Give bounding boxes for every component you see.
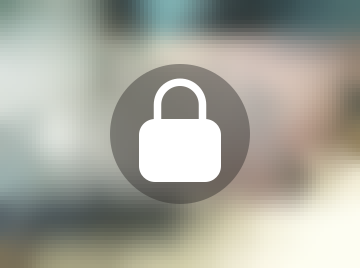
button[interactable]: Content locked [110, 64, 250, 204]
